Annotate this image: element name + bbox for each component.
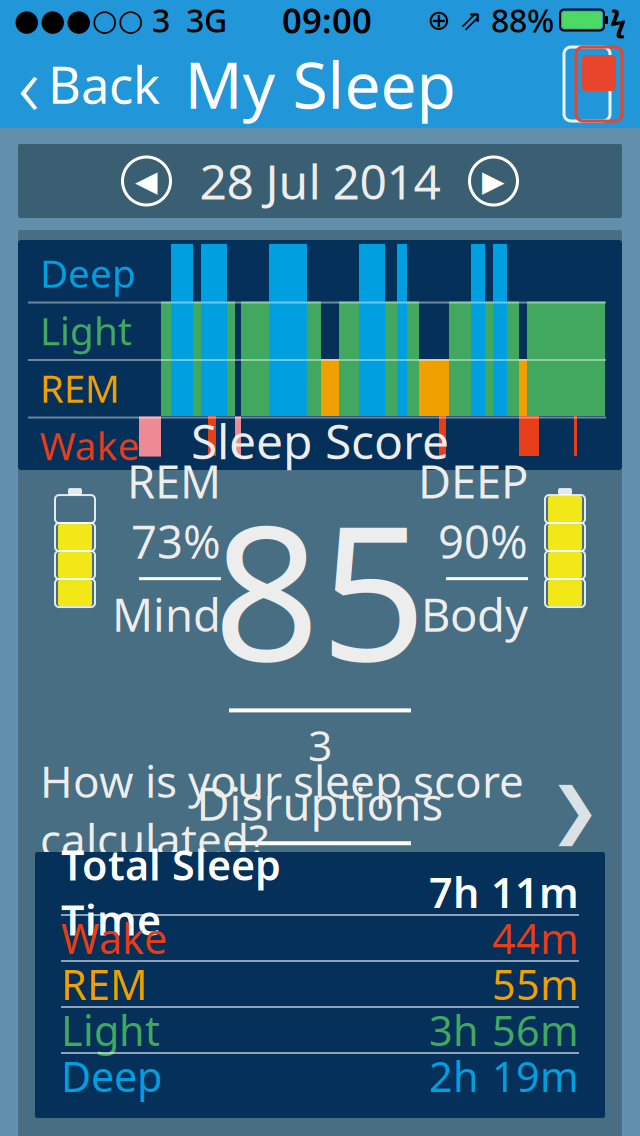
button[interactable]: Next day [466, 154, 520, 208]
staticText: 11m [491, 865, 579, 919]
staticText: Mind [112, 584, 221, 644]
staticText: ‹ [18, 29, 40, 139]
staticText: Wake [61, 911, 167, 965]
staticText: ❯ [549, 775, 600, 845]
staticText: 3h [429, 1003, 479, 1057]
staticText: 73% [131, 511, 221, 571]
staticText: REM [40, 362, 120, 413]
staticText: 3 [308, 716, 332, 773]
staticText: DEEP [418, 451, 528, 511]
staticText: Light [61, 1003, 160, 1057]
staticText: 90% [438, 511, 528, 571]
button[interactable]: How is your sleep score calculated? [18, 772, 622, 848]
staticText: Disruptions [196, 773, 443, 833]
staticText: Deep [61, 1049, 162, 1103]
button[interactable]: Sleep diary [556, 40, 640, 128]
staticText: Sleep Score [191, 409, 449, 472]
button[interactable]: ‹ [0, 40, 170, 128]
staticText: 56m [492, 1003, 579, 1057]
staticText: 3 [144, 0, 170, 41]
staticText: 7h [429, 865, 479, 919]
staticText: Light [40, 305, 132, 356]
staticText: REM [127, 451, 221, 511]
staticText: ◀ [135, 164, 158, 198]
staticText: 09:00 [282, 0, 372, 43]
button[interactable]: Previous day [119, 154, 173, 208]
staticText: 2h [429, 1049, 479, 1103]
staticText: Back [48, 50, 160, 118]
staticText: 3G [170, 0, 227, 41]
staticText: ▶ [482, 164, 505, 198]
staticText: Deep [40, 247, 136, 298]
staticText: 19m [492, 1049, 579, 1103]
staticText: ●●●○○ [14, 3, 144, 37]
staticText: ⊕ ⇗ [427, 4, 491, 36]
staticText: Body [421, 584, 528, 644]
staticText: 55m [492, 957, 579, 1011]
staticText: 85 [213, 464, 427, 712]
staticText: REM [61, 957, 147, 1011]
staticText: ϟ [610, 0, 626, 39]
staticText: 28 Jul 2014 [199, 149, 440, 213]
staticText: Total Sleep Time [61, 837, 281, 947]
staticText: 88% [491, 0, 554, 41]
staticText: How is your sleep score calculated? [40, 752, 524, 868]
staticText: Wake [40, 420, 140, 471]
staticText: 44m [492, 911, 579, 965]
staticText: My Sleep [184, 41, 455, 126]
